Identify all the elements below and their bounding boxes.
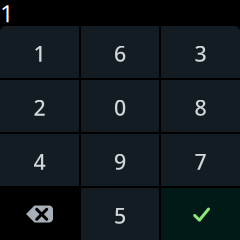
staticText: 1: [0, 0, 14, 29]
staticText: 0: [114, 93, 126, 122]
button[interactable]: 3: [161, 26, 240, 78]
button[interactable]: Delete: [0, 188, 79, 240]
staticText: 1: [33, 39, 45, 68]
button[interactable]: 5: [81, 188, 159, 240]
button[interactable]: 7: [161, 134, 240, 186]
button[interactable]: 6: [81, 26, 159, 78]
button[interactable]: 4: [0, 134, 79, 186]
staticText: 3: [194, 39, 206, 68]
staticText: 9: [114, 147, 126, 176]
button[interactable]: 0: [81, 80, 159, 132]
staticText: 5: [114, 201, 126, 230]
staticText: 7: [194, 147, 206, 176]
staticText: 4: [33, 147, 45, 176]
button[interactable]: Confirm: [161, 188, 240, 240]
staticText: 8: [194, 93, 206, 122]
button[interactable]: 9: [81, 134, 159, 186]
button[interactable]: 2: [0, 80, 79, 132]
button[interactable]: 8: [161, 80, 240, 132]
staticText: 6: [114, 39, 126, 68]
button[interactable]: 1: [0, 26, 79, 78]
staticText: 2: [33, 93, 45, 122]
